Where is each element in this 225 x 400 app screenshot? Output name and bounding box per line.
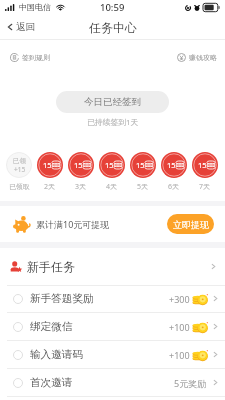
button[interactable]: 15 (37, 152, 63, 178)
staticText: 中国电信 (19, 2, 51, 12)
button[interactable]: 今日已经签到 (56, 91, 169, 113)
staticText: 15 (198, 160, 207, 170)
staticText: 新手任务 (27, 259, 75, 274)
staticText: 累计满10元可提现 (36, 218, 110, 230)
staticText: 输入邀请码 (30, 348, 83, 361)
staticText: +100 (169, 349, 190, 361)
button[interactable]: 返回 (0, 14, 43, 40)
staticText: 新手答题奖励 (30, 292, 94, 305)
button[interactable]: 15 (130, 152, 156, 178)
staticText: 立即提现 (173, 219, 209, 230)
staticText: 2天 (44, 182, 56, 192)
staticText: 赚钱攻略 (189, 53, 217, 62)
button[interactable]: 输入邀请码 (13, 341, 219, 368)
staticText: +15 (14, 165, 26, 174)
staticText: 15 (74, 160, 83, 170)
button[interactable]: 新手任务 (9, 248, 217, 285)
staticText: 5天 (137, 182, 149, 192)
button[interactable]: 立即提现 (167, 214, 214, 234)
button[interactable]: 签到规则 (0, 46, 60, 69)
staticText: 已领 (13, 157, 26, 165)
staticText: 首次邀请 (30, 376, 73, 389)
button[interactable]: 15 (161, 152, 187, 178)
button[interactable]: 已领 (6, 152, 32, 178)
staticText: 签到规则 (22, 53, 50, 62)
button[interactable]: 15 (99, 152, 125, 178)
staticText: 7天 (199, 182, 211, 192)
button[interactable]: 绑定微信 (13, 313, 219, 340)
staticText: 3天 (75, 182, 87, 192)
staticText: 今日已经签到 (84, 96, 141, 108)
staticText: 绑定微信 (30, 320, 73, 333)
button[interactable]: 赚钱攻略 (167, 46, 225, 69)
button[interactable]: 15 (192, 152, 218, 178)
staticText: 已领取 (9, 182, 30, 191)
staticText: +300 (169, 293, 190, 305)
staticText: 4天 (106, 182, 118, 192)
staticText: 10:59 (100, 1, 125, 14)
staticText: 返回 (16, 21, 35, 33)
button[interactable]: 首次邀请 (13, 369, 219, 396)
staticText: 15 (43, 160, 52, 170)
staticText: 已持续签到1天 (87, 117, 139, 128)
staticText: 6天 (168, 182, 180, 192)
button[interactable]: 新手答题奖励 (13, 285, 219, 312)
staticText: 15 (167, 160, 176, 170)
staticText: 15 (136, 160, 145, 170)
staticText: 5元奖励 (174, 377, 207, 389)
button[interactable]: 15 (68, 152, 94, 178)
staticText: 15 (105, 160, 114, 170)
staticText: +100 (169, 321, 190, 333)
staticText: 任务中心 (89, 20, 137, 35)
